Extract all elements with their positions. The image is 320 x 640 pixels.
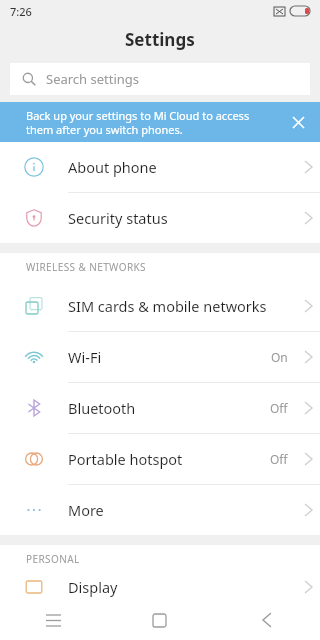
staticText: WIRELESS & NETWORKS bbox=[26, 260, 146, 274]
staticText: SIM cards & mobile networks bbox=[68, 296, 296, 316]
staticText: 7:26 bbox=[10, 4, 32, 19]
staticText: Display bbox=[68, 577, 296, 597]
button[interactable]: Wi-Fi bbox=[0, 332, 320, 382]
staticText: Back up your settings to Mi Cloud to acc… bbox=[26, 108, 250, 137]
button[interactable]: Menu bbox=[0, 600, 106, 640]
staticText: More bbox=[68, 500, 296, 520]
button[interactable]: Portable hotspot bbox=[0, 434, 320, 484]
staticText: Search settings bbox=[46, 70, 140, 88]
button[interactable]: Security status bbox=[0, 193, 320, 243]
staticText: Portable hotspot bbox=[68, 449, 270, 469]
staticText: Off bbox=[270, 451, 288, 467]
button[interactable]: Search settings bbox=[10, 63, 310, 95]
button[interactable]: SIM cards & mobile networks bbox=[0, 281, 320, 331]
staticText: PERSONAL bbox=[26, 552, 80, 566]
staticText: Off bbox=[270, 400, 288, 416]
staticText: Wi-Fi bbox=[68, 347, 271, 367]
button[interactable]: Back bbox=[213, 600, 320, 640]
staticText: Security status bbox=[68, 208, 296, 228]
staticText: On bbox=[271, 349, 288, 365]
staticText: Bluetooth bbox=[68, 398, 270, 418]
button[interactable]: More bbox=[0, 485, 320, 535]
button[interactable]: About phone bbox=[0, 142, 320, 192]
button[interactable]: Close bbox=[286, 110, 310, 134]
button[interactable]: Back up your settings to Mi Cloud to acc… bbox=[0, 102, 320, 142]
staticText: About phone bbox=[68, 157, 296, 177]
button[interactable]: Display bbox=[0, 573, 320, 600]
staticText: Settings bbox=[125, 28, 195, 51]
button[interactable]: Bluetooth bbox=[0, 383, 320, 433]
button[interactable]: Home bbox=[106, 600, 213, 640]
